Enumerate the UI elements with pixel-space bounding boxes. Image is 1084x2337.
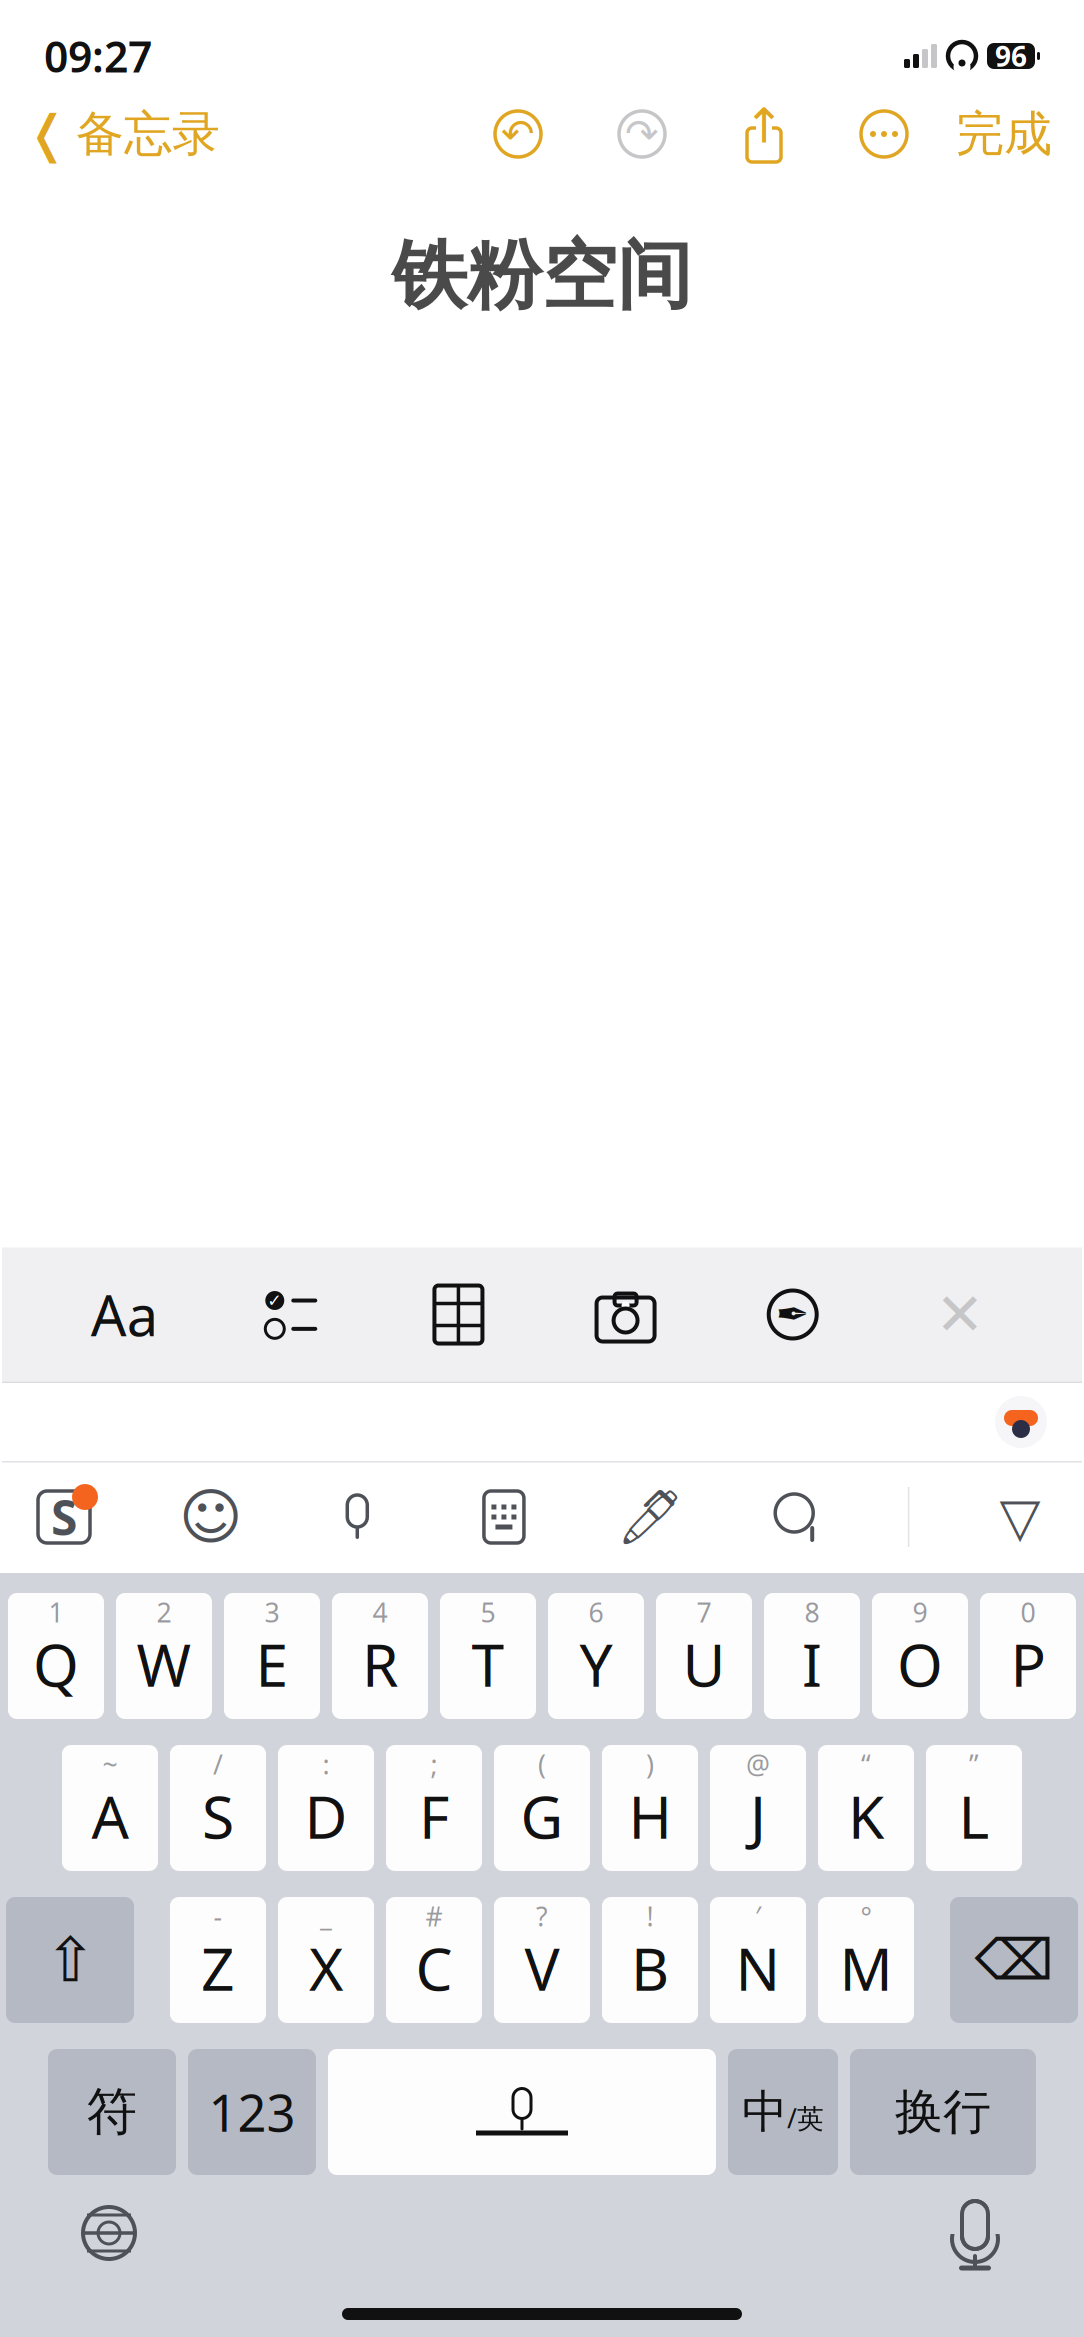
button[interactable]: 2 xyxy=(116,1593,212,1719)
button[interactable]: ~ xyxy=(62,1745,158,1871)
button[interactable]: ❬ xyxy=(2,96,220,171)
button[interactable]: 听写 xyxy=(932,2190,1018,2276)
staticText: @ xyxy=(746,1746,770,1782)
button[interactable]: 4 xyxy=(332,1593,428,1719)
button[interactable]: ′ xyxy=(710,1897,806,2023)
staticText: 3 xyxy=(264,1594,279,1630)
button[interactable]: 更多 xyxy=(858,108,910,160)
staticText: Z xyxy=(201,1929,235,2007)
button[interactable]: 中 xyxy=(728,2049,838,2175)
button[interactable]: “ xyxy=(818,1745,914,1871)
button[interactable]: 相机 xyxy=(581,1269,671,1359)
staticText: # xyxy=(425,1898,442,1934)
staticText: 0 xyxy=(1020,1594,1035,1630)
staticText: E xyxy=(255,1625,288,1703)
staticText: 🖊 xyxy=(617,1486,685,1547)
button[interactable]: 6 xyxy=(548,1593,644,1719)
button[interactable]: 换行 xyxy=(850,2049,1036,2175)
button[interactable]: 9 xyxy=(872,1593,968,1719)
button[interactable]: ? xyxy=(494,1897,590,2023)
button[interactable]: 输入法助手 xyxy=(982,1383,1060,1461)
button[interactable]: ) xyxy=(602,1745,698,1871)
staticText: /英 xyxy=(787,2100,824,2136)
button[interactable]: 123 xyxy=(188,2049,316,2175)
staticText: U xyxy=(682,1625,725,1703)
staticText: A xyxy=(91,1777,128,1855)
button[interactable]: 搜狗 xyxy=(28,1481,100,1553)
button[interactable]: ” xyxy=(926,1745,1022,1871)
button[interactable]: ° xyxy=(818,1897,914,2023)
staticText: 4 xyxy=(372,1594,387,1630)
staticText: X xyxy=(309,1929,343,2007)
staticText: ↑ xyxy=(744,99,784,153)
staticText: 符 xyxy=(86,2081,137,2143)
button[interactable]: @ xyxy=(710,1745,806,1871)
button[interactable]: 搜索 xyxy=(761,1481,833,1553)
button[interactable]: ( xyxy=(494,1745,590,1871)
button[interactable]: 清单 xyxy=(246,1269,336,1359)
button[interactable]: 0 xyxy=(980,1593,1076,1719)
staticText: R xyxy=(362,1625,398,1703)
staticText: S xyxy=(51,1485,77,1549)
staticText: 2 xyxy=(156,1594,171,1630)
staticText: 9 xyxy=(912,1594,927,1630)
button[interactable]: 收起键盘 xyxy=(984,1481,1056,1553)
staticText: M xyxy=(839,1929,892,2007)
button[interactable]: 大写 xyxy=(6,1897,134,2023)
staticText: ° xyxy=(860,1898,871,1934)
button[interactable]: 表情 xyxy=(175,1481,247,1553)
button[interactable]: ! xyxy=(602,1897,698,2023)
staticText: ! xyxy=(646,1898,653,1934)
button[interactable]: 8 xyxy=(764,1593,860,1719)
button[interactable]: 重做 xyxy=(616,108,668,160)
staticText: W xyxy=(136,1625,191,1703)
button[interactable]: 删除 xyxy=(950,1897,1078,2023)
staticText: K xyxy=(848,1777,884,1855)
button[interactable]: 3 xyxy=(224,1593,320,1719)
button[interactable]: 语音输入 xyxy=(321,1481,393,1553)
button[interactable]: 完成 xyxy=(956,96,1082,171)
button[interactable]: 符 xyxy=(48,2049,176,2175)
staticText: H xyxy=(628,1777,671,1855)
button[interactable]: 撤销 xyxy=(492,108,544,160)
staticText: ✒ xyxy=(776,1292,810,1337)
button[interactable]: 1 xyxy=(8,1593,104,1719)
button[interactable]: 空格 xyxy=(328,2049,716,2175)
button[interactable]: 手写 xyxy=(615,1481,687,1553)
button[interactable]: 格式 xyxy=(79,1269,169,1359)
staticText: 5 xyxy=(480,1594,495,1630)
staticText: 123 xyxy=(208,2078,295,2146)
button[interactable]: 标记 xyxy=(748,1269,838,1359)
staticText: 备忘录 xyxy=(76,104,220,163)
button[interactable]: - xyxy=(170,1897,266,2023)
staticText: V xyxy=(524,1929,559,2007)
staticText: Aa xyxy=(91,1277,158,1352)
staticText: _ xyxy=(320,1898,332,1934)
staticText: 1 xyxy=(48,1594,63,1630)
button[interactable]: 共享 xyxy=(738,105,790,163)
button[interactable]: 5 xyxy=(440,1593,536,1719)
staticText: : xyxy=(322,1746,329,1782)
button[interactable]: : xyxy=(278,1745,374,1871)
staticText: ☺ xyxy=(179,1482,243,1552)
staticText: P xyxy=(1010,1625,1045,1703)
button[interactable]: / xyxy=(170,1745,266,1871)
staticText: / xyxy=(213,1746,223,1782)
staticText: 8 xyxy=(804,1594,819,1630)
button[interactable]: 关闭 xyxy=(915,1269,1005,1359)
staticText: ↶ xyxy=(501,111,535,157)
button[interactable]: 7 xyxy=(656,1593,752,1719)
button[interactable]: 切换键盘 xyxy=(66,2190,152,2276)
staticText: ” xyxy=(969,1746,979,1782)
button[interactable]: 表格 xyxy=(413,1269,503,1359)
staticText: ? xyxy=(536,1898,548,1934)
button[interactable]: 键盘设置 xyxy=(468,1481,540,1553)
staticText: ✕ xyxy=(935,1281,984,1348)
button[interactable]: # xyxy=(386,1897,482,2023)
staticText: 完成 xyxy=(956,104,1052,163)
button[interactable]: ; xyxy=(386,1745,482,1871)
staticText: ) xyxy=(646,1746,654,1782)
staticText: 中 xyxy=(742,2084,787,2140)
staticText: S xyxy=(202,1777,234,1855)
button[interactable]: _ xyxy=(278,1897,374,2023)
